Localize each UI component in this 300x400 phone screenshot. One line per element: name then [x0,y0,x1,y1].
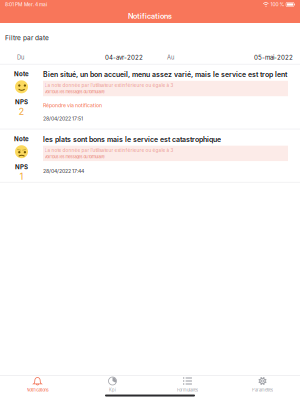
staticText: Filtre par date [5,34,49,42]
button[interactable]: Notifications [0,376,75,393]
staticText: Répondre via notification [43,102,102,108]
staticText: La note donnée par l'utilisateur est inf… [44,83,173,88]
staticText: 1 [19,171,23,182]
staticText: Voir tous les messages du formulaire [44,154,104,159]
staticText: les plats sont bons mais le service est … [43,135,221,144]
staticText: Paramètres [252,387,273,392]
staticText: Bien situé, un bon accueil, menu assez v… [43,70,287,79]
staticText: 2 [18,106,24,117]
staticText: NPS [15,163,28,171]
staticText: 8:01 PM Mer. 4 mai [5,1,47,7]
staticText: Kpi [109,387,116,392]
button[interactable]: Voir tous les messages du formulaire [44,154,104,159]
staticText: La note donnée par l'utilisateur est inf… [44,148,173,153]
staticText: 04-avr-2022 [105,54,143,61]
staticText: Formulaires [177,387,198,392]
button[interactable]: Formulaires [150,376,225,393]
staticText: Note [14,135,29,143]
staticText: NPS [15,98,28,106]
staticText: Au [167,54,174,61]
staticText: 05-mai-2022 [254,54,293,61]
button[interactable]: Note [0,129,300,182]
button[interactable]: Paramètres [225,376,300,393]
button[interactable]: Du [0,51,150,64]
button[interactable]: Voir tous les messages du formulaire [44,90,104,94]
staticText: 28/04/2022 17:44 [43,168,84,174]
staticText: Note [14,70,29,78]
button[interactable]: Répondre via notification [43,102,102,108]
button[interactable]: Kpi [75,376,150,393]
staticText: Voir tous les messages du formulaire [44,90,104,94]
staticText: Notifications [128,11,172,21]
staticText: Du [17,54,24,61]
staticText: 100 % [270,1,284,7]
button[interactable]: Au [150,51,300,64]
staticText: 28/04/2022 17:51 [43,115,83,122]
button[interactable]: Note [0,64,300,129]
staticText: Notifications [26,387,48,392]
